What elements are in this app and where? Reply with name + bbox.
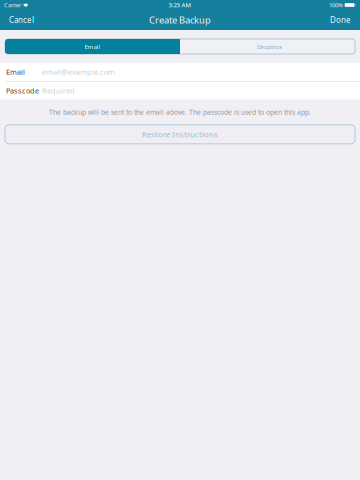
staticText: Email: [6, 67, 25, 77]
staticText: email@example.com: [42, 67, 115, 77]
button[interactable]: Passcode: [0, 82, 360, 100]
button[interactable]: Restore Instructions: [5, 125, 355, 144]
staticText: Passcode: [6, 86, 39, 96]
button[interactable]: Cancel: [0, 10, 43, 30]
staticText: Create Backup: [149, 14, 211, 26]
staticText: The backup will be sent to the email abo…: [49, 108, 311, 117]
staticText: Required: [42, 86, 75, 96]
staticText: 100%: [329, 1, 343, 9]
staticText: 3:23 AM: [168, 1, 191, 9]
button[interactable]: Email: [0, 63, 360, 81]
staticText: Restore Instructions: [142, 129, 218, 140]
staticText: Email: [84, 42, 100, 51]
staticText: Cancel: [9, 15, 34, 25]
button[interactable]: Done: [321, 10, 360, 30]
button[interactable]: Dropbox: [184, 39, 355, 54]
button[interactable]: Email: [5, 39, 180, 54]
staticText: Done: [330, 15, 351, 25]
staticText: Carrier: [4, 1, 21, 9]
staticText: Dropbox: [257, 42, 282, 51]
